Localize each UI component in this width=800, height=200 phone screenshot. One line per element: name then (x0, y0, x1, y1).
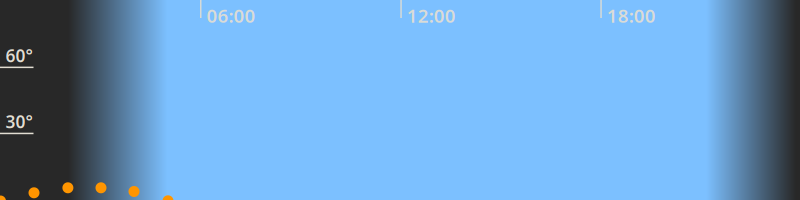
staticText: 18:00 (607, 3, 656, 28)
staticText: 12:00 (407, 3, 456, 28)
staticText: 30° (5, 110, 32, 133)
staticText: 60° (5, 44, 32, 67)
staticText: 06:00 (206, 3, 255, 28)
